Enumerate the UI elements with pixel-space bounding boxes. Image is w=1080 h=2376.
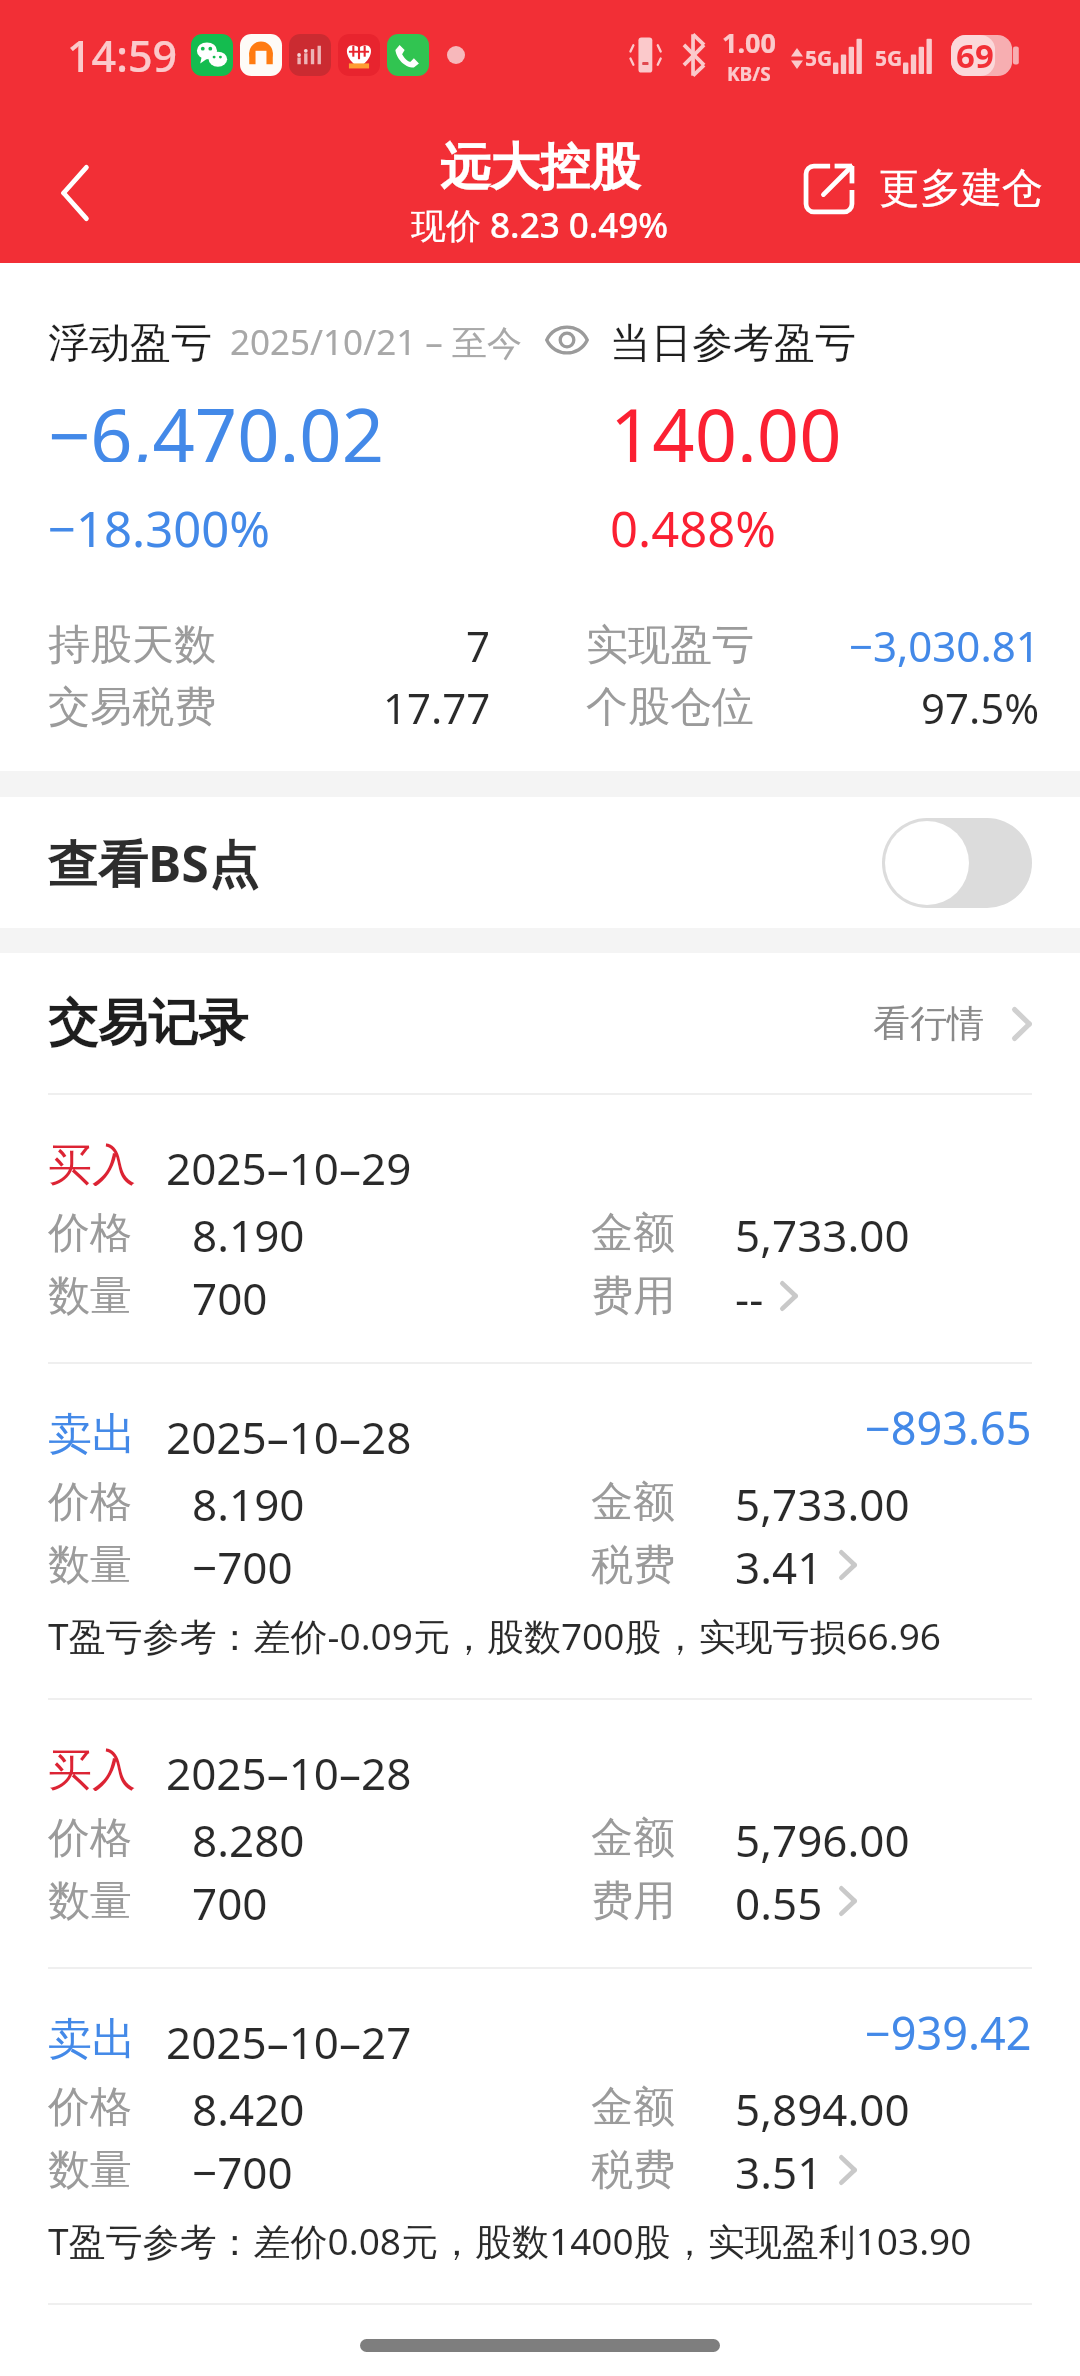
staticText: 2025–10–27 [166,2012,412,2060]
staticText: 数量 [48,1875,132,1928]
staticText: T盈亏参考：差价-0.09元，股数700股，实现亏损66.96 [48,1610,941,1661]
button[interactable]: 卖出 [0,1969,1080,2305]
staticText: 2025–10–29 [166,1138,412,1186]
staticText: −700 [192,1537,293,1593]
staticText: 17.77 [383,679,491,736]
staticText: 5,894.00 [735,2079,910,2135]
staticText: 远大控股 [440,136,640,199]
button[interactable]: 更多建仓 [795,151,1049,227]
staticText: 个股仓位 [586,681,754,734]
staticText: 金额 [591,1207,675,1260]
staticText: 5G [805,44,833,73]
staticText: 查看BS点 [48,829,259,897]
staticText: 数量 [48,2144,132,2197]
button[interactable]: 查看BS点 [0,797,1080,928]
staticText: 7 [466,617,491,674]
staticText: 数量 [48,1539,132,1592]
staticText: −3,030.81 [849,617,1040,674]
staticText: 5,733.00 [735,1474,910,1530]
staticText: 价格 [48,1476,132,1529]
staticText: 3.41 [735,1537,823,1593]
staticText: −700 [192,2142,293,2198]
staticText: 8.420 [192,2079,305,2135]
staticText: 交易记录 [48,992,248,1055]
staticText: 0.55 [735,1873,823,1929]
staticText: 2025–10–28 [166,1407,412,1455]
staticText: 买入 [48,1138,136,1186]
staticText: 卖出 [48,1407,136,1455]
button[interactable]: 看行情 [873,990,1032,1057]
staticText: 140.00 [610,384,842,462]
button[interactable]: 买入 [0,1095,1080,1364]
staticText: 5,796.00 [735,1810,910,1866]
button[interactable]: 买入 [0,1700,1080,1969]
staticText: 实现盈亏 [586,619,754,672]
staticText: 当日参考盈亏 [610,318,856,362]
staticText: 金额 [591,2081,675,2134]
staticText: 69 [956,33,994,78]
staticText: 税费 [591,1539,675,1592]
staticText: 金额 [591,1476,675,1529]
staticText: 0.488% [610,495,776,559]
staticText: 3.51 [735,2142,823,2198]
staticText: 金额 [591,1812,675,1865]
staticText: 8.280 [192,1810,305,1866]
staticText: 8.190 [192,1474,305,1530]
staticText: −893.65 [865,1397,1032,1445]
staticText: 现价 8.23 0.49% [411,201,669,249]
staticText: 浮动盈亏 [48,318,212,362]
staticText: 交易税费 [48,681,216,734]
staticText: 更多建仓 [879,163,1043,215]
staticText: 看行情 [873,1000,984,1047]
staticText: 价格 [48,1207,132,1260]
staticText: 2025/10/21 – 至今 [230,318,522,362]
staticText: 8.190 [192,1205,305,1261]
staticText: 费用 [591,1875,675,1928]
staticText: 97.5% [921,679,1040,736]
staticText: 700 [192,1268,268,1324]
staticText: −18.300% [48,495,271,559]
staticText: 价格 [48,1812,132,1865]
staticText: 费用 [591,1270,675,1323]
staticText: 数量 [48,1270,132,1323]
staticText: KB/S [727,61,771,87]
staticText: −6,470.02 [48,384,384,462]
staticText: 2025–10–28 [166,1743,412,1791]
staticText: 14:59 [67,26,178,85]
staticText: 5,733.00 [735,1205,910,1261]
staticText: 税费 [591,2144,675,2197]
staticText: 700 [192,1873,268,1929]
staticText: 1.00 [722,24,776,61]
staticText: 持股天数 [48,619,216,672]
button[interactable]: Toggle amount visibility [543,318,591,362]
staticText: -- [735,1268,764,1324]
button[interactable]: 卖出 [0,1364,1080,1700]
staticText: −939.42 [865,2002,1032,2050]
staticText: 价格 [48,2081,132,2134]
staticText: 5G [875,44,903,73]
staticText: T盈亏参考：差价0.08元，股数1400股，实现盈利103.90 [48,2215,972,2266]
staticText: 卖出 [48,2012,136,2060]
button[interactable]: Back [30,148,120,238]
staticText: 买入 [48,1743,136,1791]
